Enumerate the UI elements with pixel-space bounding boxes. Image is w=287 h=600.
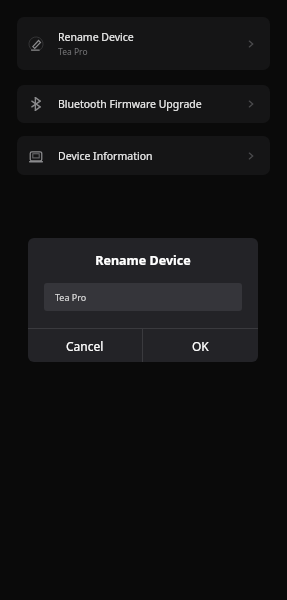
staticText: Tea Pro: [58, 46, 88, 58]
staticText: Rename Device: [58, 30, 134, 44]
other: Open Bluetooth Firmware Upgrade: [245, 98, 257, 110]
staticText: Rename Device: [28, 252, 258, 269]
other: Open Rename Device: [245, 38, 257, 50]
staticText: Tea Pro: [55, 291, 87, 303]
button[interactable]: Cancel: [28, 329, 142, 362]
staticText: Cancel: [66, 338, 104, 354]
button[interactable]: Tea Pro: [44, 283, 242, 311]
button[interactable]: Bluetooth Firmware Upgrade: [17, 85, 270, 123]
staticText: OK: [192, 338, 209, 354]
button[interactable]: Rename Device: [17, 17, 270, 70]
button[interactable]: Device Information: [17, 136, 270, 175]
staticText: Device Information: [58, 149, 153, 163]
staticText: Bluetooth Firmware Upgrade: [58, 97, 202, 111]
other: Open Device Information: [245, 150, 257, 162]
button[interactable]: OK: [143, 329, 258, 362]
